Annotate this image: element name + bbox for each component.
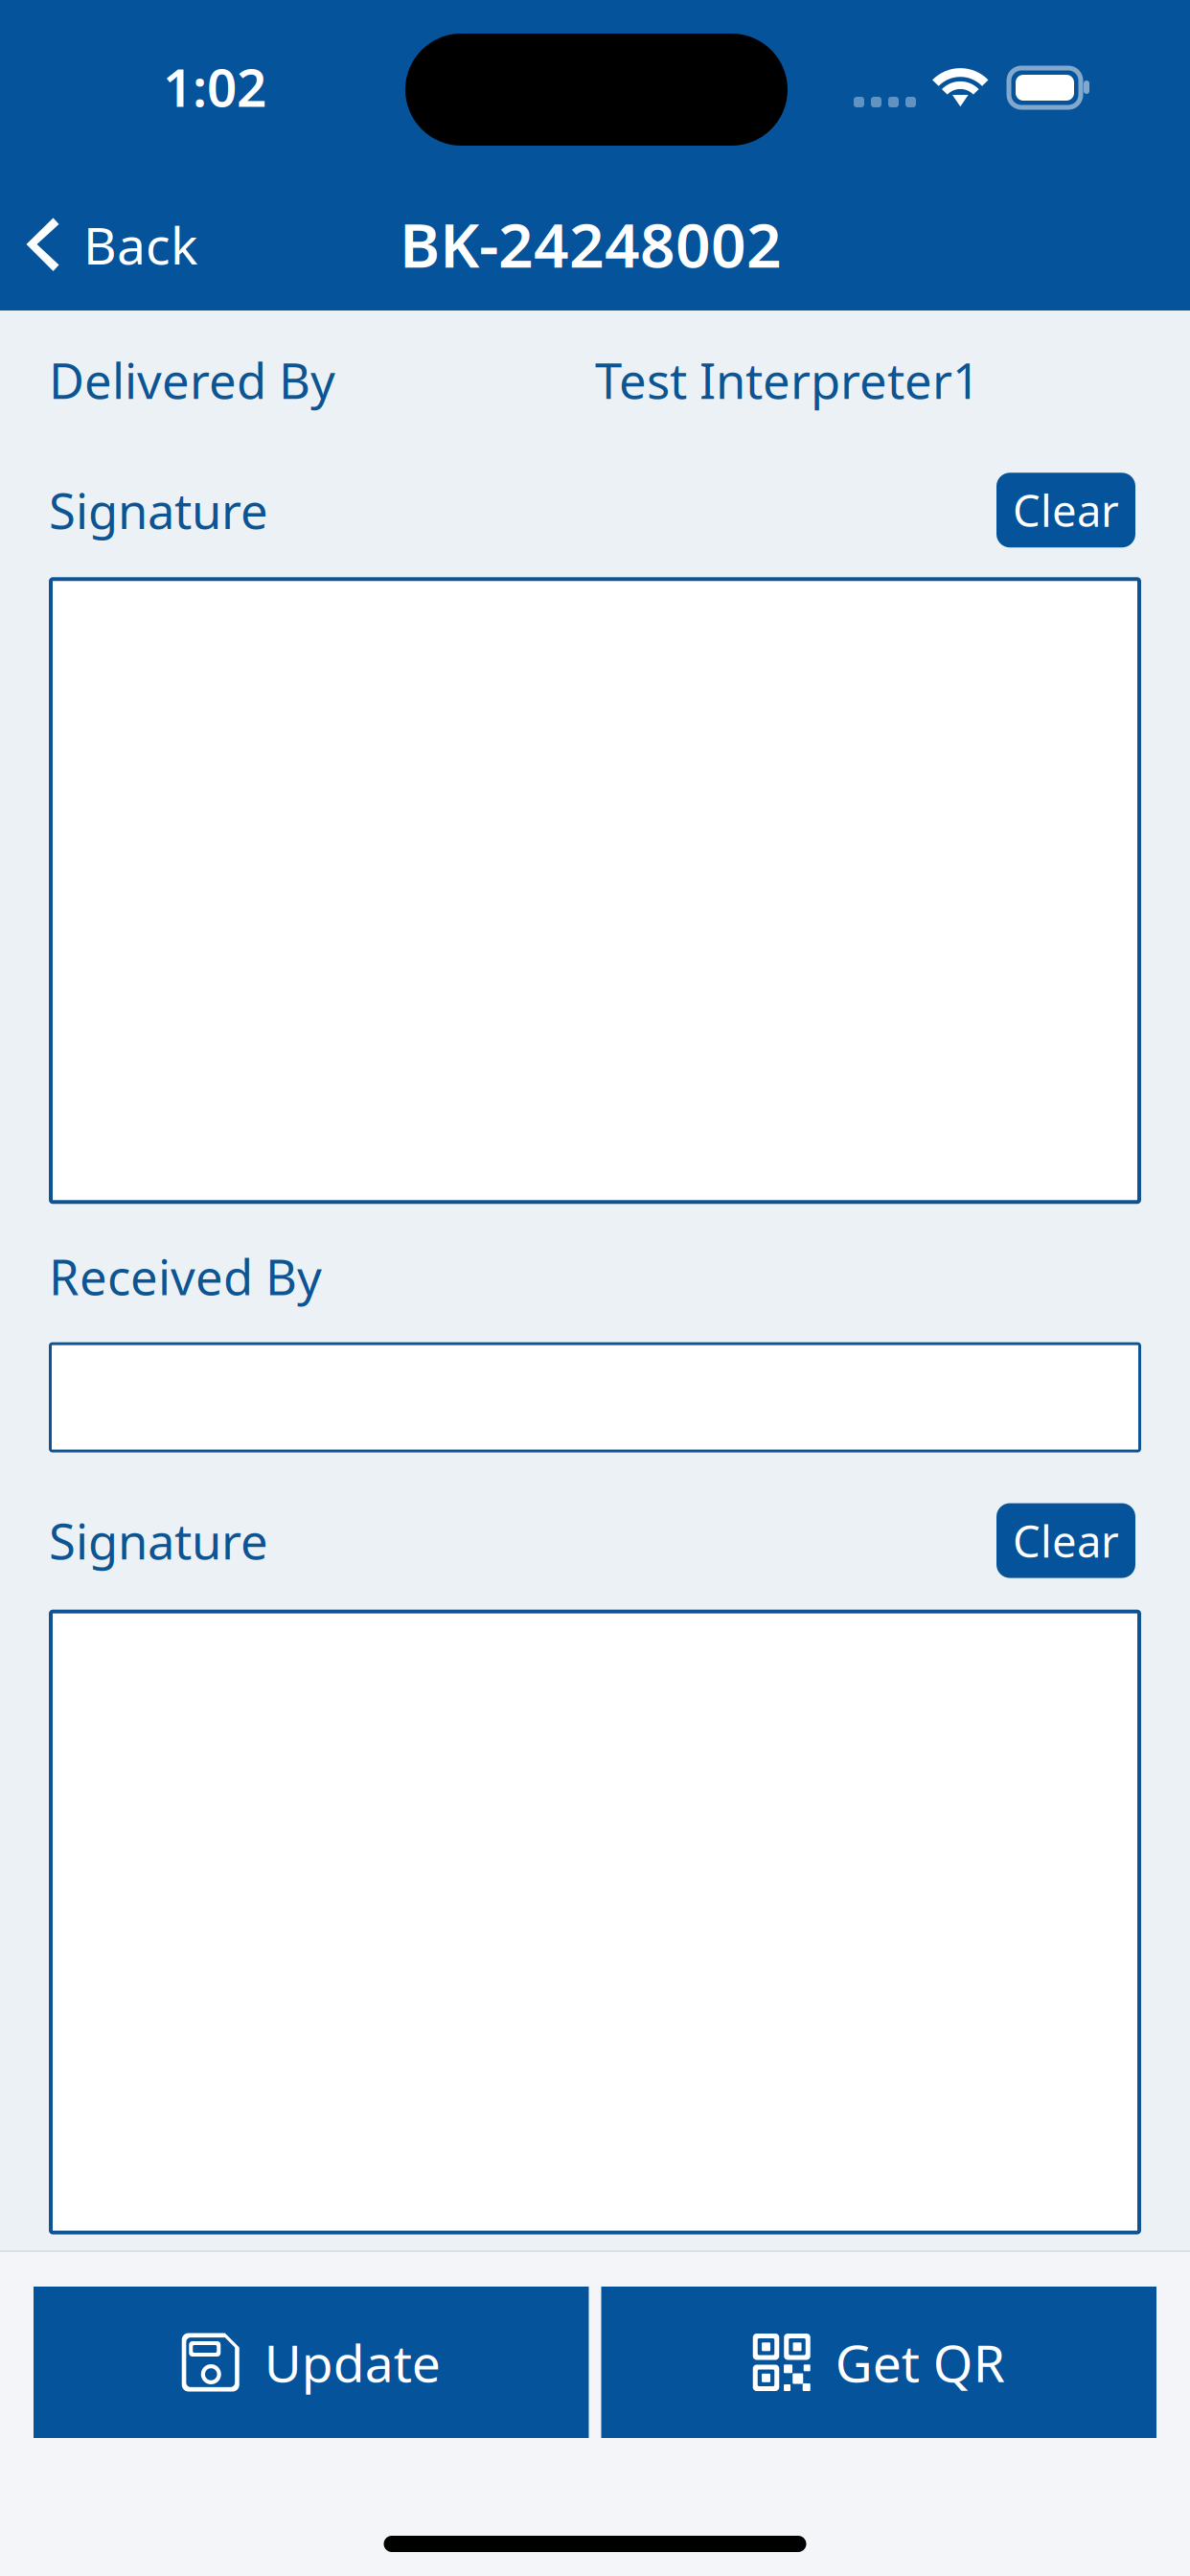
staticText: Signature xyxy=(49,1508,268,1573)
button[interactable]: Get QR xyxy=(601,2287,1156,2438)
staticText: Get QR xyxy=(835,2328,1005,2396)
button[interactable]: Received by signature xyxy=(49,1610,1141,2234)
button[interactable]: Update xyxy=(34,2287,589,2438)
staticText: Back xyxy=(83,211,197,279)
button[interactable]: Clear xyxy=(996,1503,1141,1578)
button[interactable]: Received by name xyxy=(49,1342,1141,1452)
staticText: Clear xyxy=(1013,1512,1119,1569)
staticText: BK-24248002 xyxy=(400,203,782,285)
staticText: Test Interpreter1 xyxy=(595,348,980,412)
staticText: Delivered By xyxy=(49,348,335,412)
button[interactable]: Clear xyxy=(996,473,1141,547)
staticText: Update xyxy=(264,2328,441,2396)
staticText: Received By xyxy=(49,1244,322,1309)
button[interactable]: Delivered by signature xyxy=(49,577,1141,1204)
staticText: Clear xyxy=(1013,481,1119,539)
staticText: 1:02 xyxy=(163,52,266,121)
button[interactable]: Back xyxy=(0,190,217,300)
staticText: Signature xyxy=(49,478,268,542)
